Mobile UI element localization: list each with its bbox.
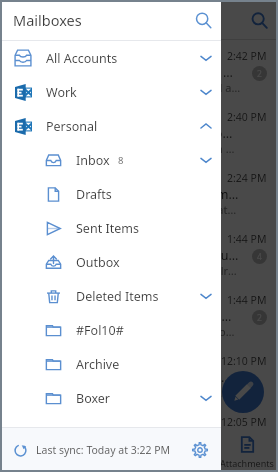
staticText: Last sync: Today at 3:22 PM [36, 443, 171, 457]
staticText: Please take a moment to review the updat… [10, 202, 242, 217]
staticText: Boxer [76, 390, 111, 407]
staticText: 8 [118, 154, 124, 167]
button[interactable]: Search [190, 7, 216, 33]
button[interactable]: Invoice 8843 has been checked and approv… [0, 345, 278, 406]
button[interactable]: Archive [0, 347, 221, 381]
staticText: Hanna Sandberg shared the update note wi… [10, 64, 240, 81]
button[interactable]: Fwd: Trip recap photos from the group we… [0, 223, 278, 284]
staticText: Invoice 8843 has been checked and approv… [10, 369, 228, 386]
button[interactable]: Compose [222, 371, 264, 413]
button[interactable]: #Fol10# [0, 313, 221, 347]
button[interactable]: Settings [187, 437, 213, 463]
staticText: Mailboxes [13, 10, 82, 30]
staticText: Work [46, 84, 77, 101]
button[interactable]: Refresh [0, 428, 221, 472]
button[interactable]: Junk [0, 415, 221, 427]
staticText: 1:44 PM [227, 293, 267, 307]
staticText: Inbox [76, 152, 110, 169]
staticText: 2:42 PM [227, 49, 267, 63]
button[interactable]: Drafts [0, 177, 221, 211]
button[interactable]: Outbox [0, 245, 221, 279]
staticText: 12:10 PM [221, 354, 267, 368]
staticText: Attachments [220, 457, 274, 469]
button[interactable]: Meeting notes from April planning sessio… [0, 284, 278, 345]
button[interactable]: Personal [0, 109, 221, 143]
button[interactable]: Hanna Sandberg shared the update note wi… [0, 40, 278, 101]
staticText: Deleted Items [76, 288, 159, 305]
staticText: Thanks, received the confirmation from a… [10, 385, 228, 400]
staticText: Reminder: standup is moved to a later ti… [10, 430, 224, 447]
button[interactable]: Boxer [0, 381, 221, 415]
button[interactable]: Attachments [216, 431, 278, 472]
button[interactable]: Inbox [0, 143, 221, 177]
staticText: Meeting notes from April planning sessio… [10, 308, 237, 325]
button[interactable]: Reminder: standup is moved to a later ti… [0, 406, 278, 431]
staticText: Updated numbers are ready for the team R… [10, 141, 238, 156]
button[interactable]: Sent Items [0, 211, 221, 245]
button[interactable]: Deleted Items [0, 279, 221, 313]
staticText: 2 [257, 312, 262, 324]
staticText: #Fol10# [76, 322, 124, 339]
staticText: Personal [46, 118, 98, 135]
staticText: Attached are the files. I have sent them… [10, 263, 242, 278]
staticText: Archive [76, 356, 120, 373]
staticText: Sent Items [76, 220, 139, 237]
button[interactable]: Refresh [8, 438, 32, 462]
staticText: 2 [257, 68, 262, 80]
staticText: All Accounts [46, 50, 118, 67]
staticText: 12:05 PM [221, 415, 267, 429]
staticText: See the revised draft when you have a mo… [10, 324, 240, 339]
staticText: 4 [257, 251, 262, 263]
staticText: 1:44 PM [227, 232, 267, 246]
staticText: Fwd: Trip recap photos from the group we… [10, 247, 241, 264]
staticText: 2:24 PM [227, 171, 267, 185]
staticText: Weekly newsletter sign ups keep climbing… [10, 186, 243, 203]
staticText: Outbox [76, 254, 120, 271]
button[interactable]: Weekly newsletter sign ups keep climbing… [0, 162, 278, 223]
button[interactable]: All Accounts [0, 41, 221, 75]
staticText: Hey everyone, did you already get my del… [10, 80, 243, 95]
staticText: Tomorrow at nine in the main conference … [10, 446, 224, 461]
staticText: 2:40 PM [227, 110, 267, 124]
button[interactable]: Quarterly results are in and look promis… [0, 101, 278, 162]
button[interactable]: Search mail [246, 7, 272, 33]
staticText: Quarterly results are in and look promis… [10, 125, 240, 142]
staticText: Drafts [76, 186, 112, 203]
button[interactable]: Work [0, 75, 221, 109]
